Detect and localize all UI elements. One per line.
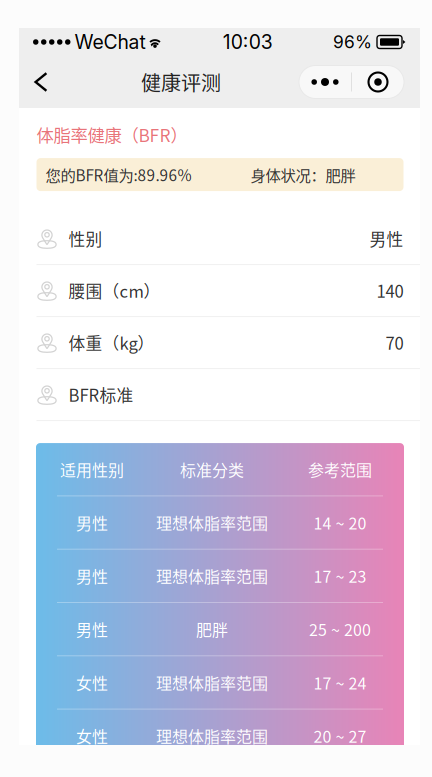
staticText: 性别 [68,226,102,251]
staticText: BFR标准 [68,382,133,407]
staticText: 理想体脂率范围 [156,671,268,694]
staticText: 体重（kg） [68,330,154,355]
staticText: 男性 [76,564,108,587]
staticText: 身体状况：肥胖 [250,163,355,186]
staticText: 男性 [76,511,108,534]
staticText: 男性 [76,618,108,641]
staticText: 理想体脂率范围 [156,724,268,747]
staticText: 腰围（cm） [68,278,160,303]
button[interactable]: Close mini program [352,65,404,98]
staticText: 25 ~ 200 [309,618,371,641]
staticText: 理想体脂率范围 [156,564,268,587]
button[interactable]: 性别 [19,213,420,265]
staticText: 17 ~ 23 [313,564,366,587]
staticText: 您的BFR值为:89.96% [45,163,191,186]
button[interactable]: 体重（kg） [19,317,420,369]
button[interactable]: 腰围（cm） [19,265,420,317]
staticText: 96% [333,31,372,52]
staticText: 17 ~ 24 [313,671,366,694]
staticText: 肥胖 [196,618,228,641]
staticText: 14 ~ 20 [313,511,366,534]
staticText: 10:03 [223,30,273,54]
staticText: 20 ~ 27 [313,724,366,747]
staticText: 健康评测 [141,67,221,96]
staticText: 适用性别 [60,458,124,481]
staticText: 参考范围 [308,458,372,481]
button[interactable]: More options [299,65,351,98]
staticText: 140 [376,278,403,303]
staticText: 体脂率健康（BFR） [36,122,187,147]
staticText: WeChat [74,30,145,54]
staticText: 理想体脂率范围 [156,511,268,534]
staticText: 70 [385,330,403,355]
staticText: 标准分类 [180,458,244,481]
staticText: 女性 [76,724,108,747]
staticText: 女性 [76,671,108,694]
button[interactable]: Back [19,60,63,104]
staticText: 男性 [369,226,403,251]
button[interactable]: BFR标准 [19,369,420,421]
